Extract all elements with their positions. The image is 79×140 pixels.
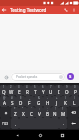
button[interactable]: -: [43, 96, 52, 107]
staticText: S: [69, 74, 72, 80]
staticText: *: [14, 107, 16, 111]
staticText: -: [47, 96, 48, 100]
staticText: ': [31, 107, 32, 111]
staticText: X: [22, 111, 25, 117]
button[interactable]: _: [25, 96, 34, 107]
button[interactable]: .: [59, 118, 67, 129]
staticText: V: [38, 111, 41, 117]
button[interactable]: @: [0, 96, 8, 107]
button[interactable]: 8: [55, 85, 63, 96]
button[interactable]: 7: [47, 85, 55, 96]
button[interactable]: Navigate up: [0, 6, 8, 14]
staticText: ?123: [2, 122, 9, 126]
staticText: F: [28, 100, 31, 106]
button[interactable]: :: [35, 107, 43, 118]
staticText: 8: [58, 85, 60, 89]
staticText: A: [3, 100, 6, 106]
staticText: ?: [62, 107, 64, 111]
button[interactable]: ": [19, 107, 27, 118]
button[interactable]: Enter: [67, 118, 79, 129]
button[interactable]: Recent apps: [57, 130, 67, 140]
staticText: T: [34, 89, 37, 95]
button[interactable]: Back: [12, 130, 22, 140]
button[interactable]: ?: [59, 107, 67, 118]
staticText: L: [73, 100, 76, 106]
staticText: O: [65, 89, 69, 95]
button[interactable]: ;: [43, 107, 51, 118]
staticText: ": [22, 107, 24, 111]
staticText: Testing Testword: [10, 7, 47, 13]
staticText: W: [9, 89, 14, 95]
button[interactable]: +: [52, 96, 61, 107]
staticText: 9: [66, 85, 68, 89]
staticText: 0: [74, 85, 76, 89]
staticText: ;: [47, 107, 48, 111]
staticText: K: [64, 100, 67, 106]
staticText: R: [26, 89, 29, 95]
staticText: B: [46, 111, 49, 117]
button[interactable]: ?123: [0, 118, 11, 129]
staticText: .: [63, 121, 64, 126]
staticText: U: [49, 89, 53, 95]
button[interactable]: !: [51, 107, 59, 118]
staticText: ,: [15, 121, 16, 126]
button[interactable]: 6: [39, 85, 47, 96]
button[interactable]: ': [27, 107, 35, 118]
staticText: 1: [3, 85, 5, 89]
button[interactable]: Home: [35, 130, 45, 140]
button[interactable]: 4: [23, 85, 31, 96]
button[interactable]: *: [11, 107, 19, 118]
staticText: &: [38, 96, 40, 100]
staticText: +: [56, 96, 58, 100]
button[interactable]: Shift: [0, 107, 11, 118]
staticText: Y: [42, 89, 45, 95]
button[interactable]: 2: [7, 85, 15, 96]
staticText: J: [56, 100, 58, 106]
staticText: #: [11, 96, 13, 100]
staticText: Z: [14, 111, 17, 117]
button[interactable]: 5: [31, 85, 39, 96]
staticText: I: [58, 89, 60, 95]
button[interactable]: (: [61, 96, 70, 107]
staticText: 2: [10, 85, 12, 89]
staticText: D: [19, 100, 23, 106]
button[interactable]: 0: [71, 85, 79, 96]
button[interactable]: Gboard menu: [2, 73, 10, 81]
staticText: 3: [18, 85, 20, 89]
staticText: 5: [34, 85, 36, 89]
staticText: 6: [42, 85, 44, 89]
staticText: S: [11, 100, 14, 106]
staticText: 7: [50, 85, 52, 89]
staticText: :: [39, 107, 40, 111]
button[interactable]: Account: [67, 73, 74, 80]
button[interactable]: &: [34, 96, 43, 107]
staticText: 4: [26, 85, 28, 89]
staticText: $: [20, 96, 22, 100]
staticText: C: [30, 111, 33, 117]
staticText: H: [46, 100, 50, 106]
button[interactable]: 1: [0, 85, 7, 96]
staticText: !: [55, 107, 56, 111]
staticText: G: [37, 100, 41, 106]
button[interactable]: Call: [62, 6, 70, 14]
staticText: E: [18, 89, 21, 95]
button[interactable]: ): [70, 96, 79, 107]
staticText: Q: [2, 89, 6, 95]
staticText: Pocket speaks: [16, 75, 38, 79]
button[interactable]: 9: [63, 85, 71, 96]
staticText: P: [74, 89, 77, 95]
staticText: (: [65, 96, 66, 100]
button[interactable]: Backspace: [67, 107, 79, 118]
button[interactable]: Pocket speaks: [11, 73, 65, 81]
button[interactable]: $: [16, 96, 25, 107]
button[interactable]: 3: [15, 85, 23, 96]
staticText: _: [29, 96, 31, 100]
staticText: @: [3, 96, 6, 100]
staticText: M: [61, 111, 66, 117]
button[interactable]: More options: [70, 6, 78, 14]
button[interactable]: #: [8, 96, 16, 107]
staticText: ): [74, 96, 75, 100]
staticText: N: [53, 111, 57, 117]
button[interactable]: ,: [11, 118, 19, 129]
